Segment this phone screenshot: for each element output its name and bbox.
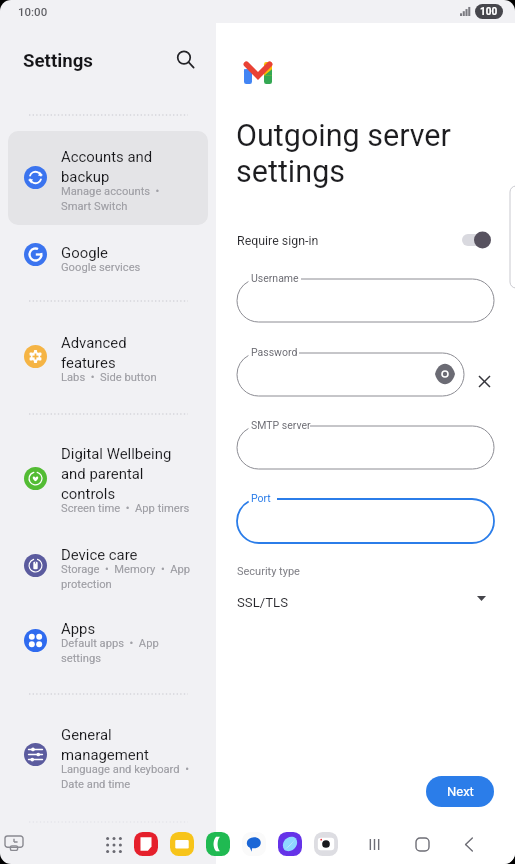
staticText: SSL/TLS <box>237 595 289 610</box>
staticText: Accounts and backup <box>61 148 153 185</box>
staticText: Settings <box>23 50 93 72</box>
button[interactable] <box>8 134 208 224</box>
staticText: Next <box>447 784 474 799</box>
staticText: General management <box>61 726 149 763</box>
button[interactable]: SMTP server <box>237 418 494 469</box>
button[interactable]: Screen timeout <box>2 831 26 855</box>
staticText: Manage accounts • Smart Switch <box>61 185 163 212</box>
staticText: Google services <box>61 261 141 274</box>
staticText: Password <box>251 346 298 358</box>
staticText: Digital Wellbeing and parental controls <box>61 445 172 502</box>
button[interactable] <box>8 606 208 687</box>
button[interactable]: Require sign-in toggle <box>456 225 496 255</box>
staticText: Require sign-in <box>237 233 319 248</box>
staticText: Apps <box>61 620 96 637</box>
button[interactable]: All apps <box>100 831 128 859</box>
staticText: Outgoing server settings <box>236 118 515 190</box>
button[interactable]: Username <box>237 271 494 322</box>
staticText: Storage • Memory • App protection <box>61 563 191 590</box>
button[interactable]: Clear password <box>470 367 499 396</box>
staticText: Device care <box>61 546 138 563</box>
button[interactable] <box>8 431 208 525</box>
button[interactable]: SSL/TLS <box>216 586 515 618</box>
button[interactable]: cam <box>314 832 338 856</box>
button[interactable]: phone <box>206 832 230 856</box>
staticText: Language and keyboard • Date and time <box>61 763 192 790</box>
staticText: SMTP server <box>251 419 311 431</box>
button[interactable]: Password <box>237 345 464 396</box>
button[interactable] <box>8 320 208 403</box>
staticText: Username <box>251 272 299 284</box>
staticText: Labs • Side button <box>61 371 157 384</box>
button[interactable]: net <box>278 832 302 856</box>
button[interactable]: Port <box>237 491 494 543</box>
button[interactable]: Next <box>426 776 494 807</box>
button[interactable]: Search <box>168 42 202 76</box>
button[interactable]: Home <box>410 832 434 856</box>
staticText: 100 <box>480 6 498 18</box>
button[interactable] <box>8 712 208 801</box>
button[interactable] <box>8 532 208 612</box>
staticText: Google <box>61 244 109 261</box>
staticText: Security type <box>237 565 300 578</box>
button[interactable]: notes <box>134 832 158 856</box>
button[interactable]: Back <box>457 832 481 856</box>
button[interactable]: Recents <box>362 832 386 856</box>
button[interactable]: msg <box>242 832 266 856</box>
button[interactable] <box>8 230 208 301</box>
staticText: Default apps • App settings <box>61 637 159 664</box>
staticText: Advanced features <box>61 334 127 371</box>
button[interactable]: Show password <box>432 361 458 387</box>
staticText: Screen time • App timers <box>61 502 190 515</box>
staticText: Port <box>251 492 271 504</box>
staticText: 10:00 <box>18 5 48 18</box>
button[interactable]: files <box>170 832 194 856</box>
